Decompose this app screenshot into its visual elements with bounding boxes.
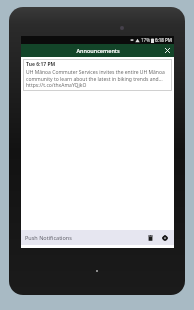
- button[interactable]: Tue 6:17 PM: [23, 59, 172, 91]
- staticText: Push Notifications: [25, 234, 72, 241]
- button[interactable]: Close: [161, 44, 174, 57]
- staticText: UH Mānoa Commuter Services invites the e…: [26, 69, 169, 89]
- button[interactable]: Settings: [159, 232, 171, 244]
- staticText: Tue 6:17 PM: [26, 61, 56, 68]
- staticText: Announcements: [76, 47, 120, 54]
- button[interactable]: Push Notifications: [21, 230, 174, 245]
- button[interactable]: Delete: [144, 232, 156, 244]
- staticText: 6:18 PM: [155, 37, 172, 43]
- staticText: 17%: [141, 37, 150, 43]
